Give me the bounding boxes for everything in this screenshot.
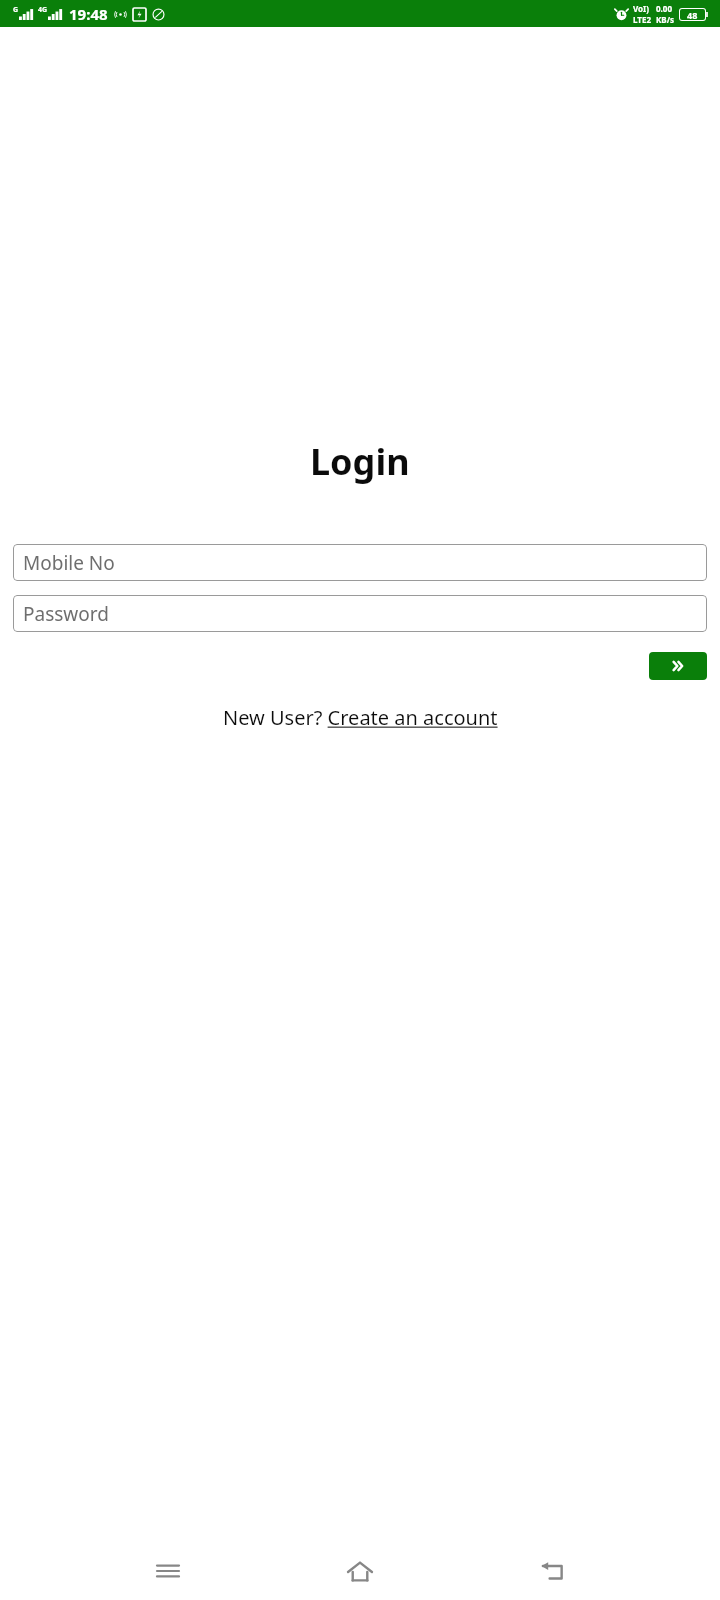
- button[interactable]: Home: [335, 1546, 385, 1596]
- staticText: 48: [687, 9, 698, 20]
- staticText: 19:48: [69, 4, 108, 24]
- button[interactable]: Back: [528, 1546, 578, 1596]
- button[interactable]: Password: [13, 595, 707, 632]
- staticText: Password: [23, 601, 109, 627]
- staticText: G: [13, 5, 19, 15]
- staticText: Mobile No: [23, 550, 115, 576]
- staticText: 0.00: [656, 3, 672, 14]
- staticText: New User? Create an account: [223, 704, 498, 731]
- button[interactable]: Submit: [649, 652, 707, 680]
- button[interactable]: Mobile No: [13, 544, 707, 581]
- staticText: KB/s: [656, 14, 674, 25]
- staticText: LTE2: [633, 14, 651, 25]
- staticText: VoI): [633, 3, 649, 14]
- button[interactable]: Recent apps: [143, 1546, 193, 1596]
- staticText: Login: [310, 437, 410, 486]
- staticText: 4G: [38, 5, 48, 15]
- button[interactable]: New User? Create an account: [219, 702, 502, 733]
